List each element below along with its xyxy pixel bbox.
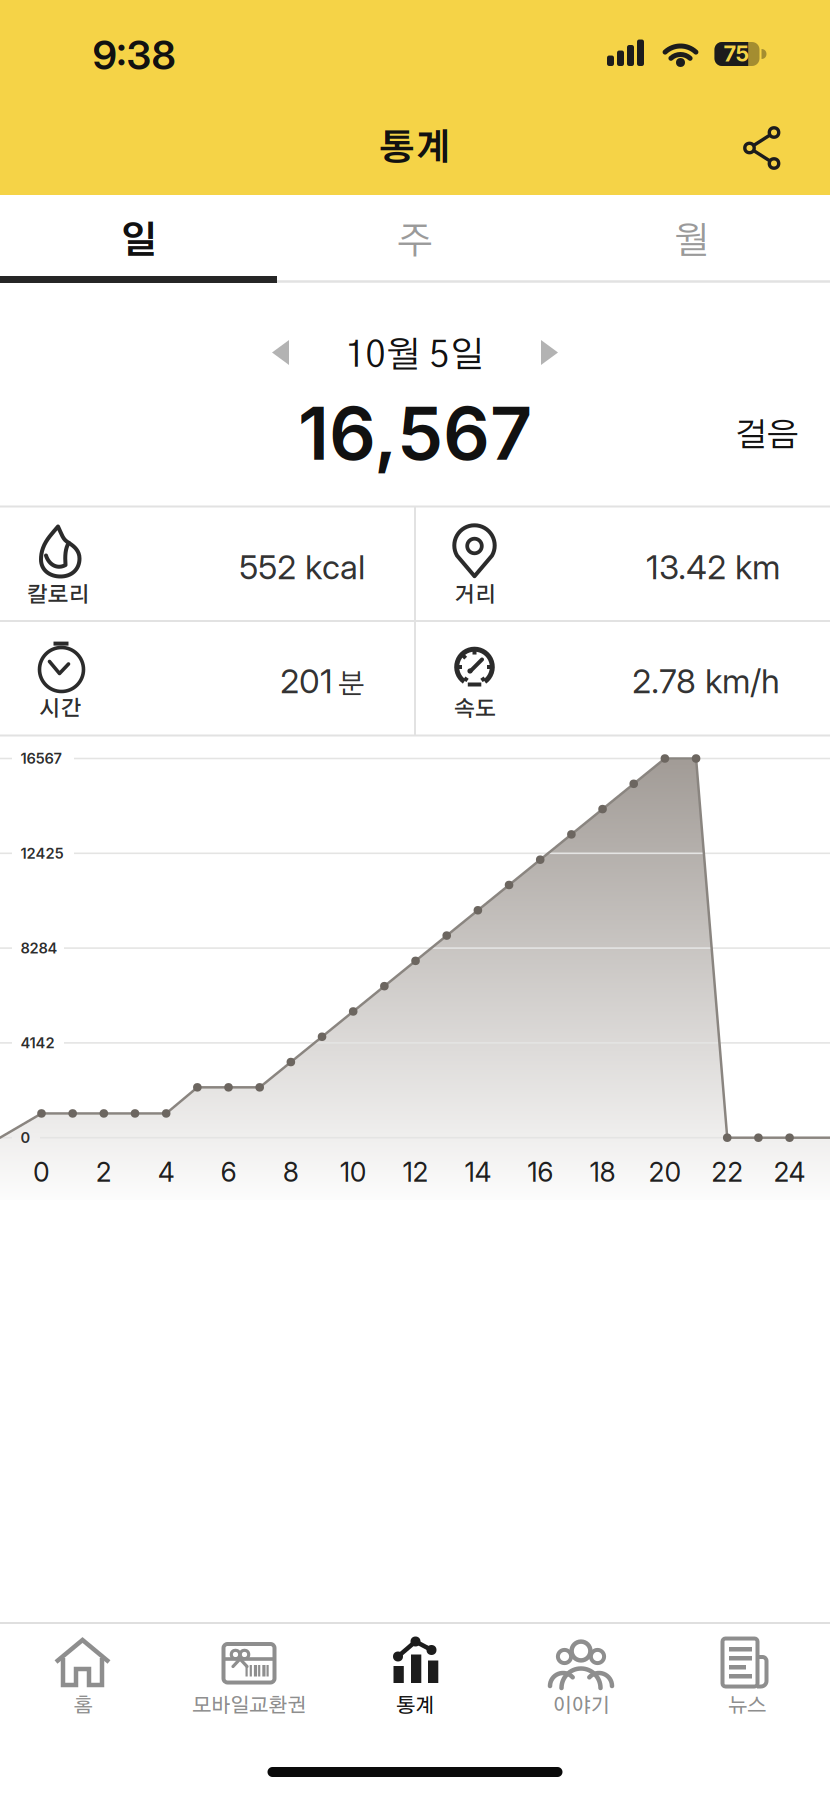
staticText: 뉴스 (728, 1696, 766, 1716)
button[interactable]: Share (727, 112, 797, 182)
staticText: 일 (120, 223, 157, 261)
staticText: 75 (723, 40, 749, 67)
staticText: 칼로리 (26, 585, 89, 606)
staticText: 걸음 (735, 419, 799, 453)
staticText: 12425 (20, 844, 63, 862)
button[interactable]: Next day (521, 334, 565, 370)
staticText: 속도 (454, 699, 496, 720)
staticText: 8 (283, 1156, 299, 1188)
button[interactable]: 통계 (332, 1626, 498, 1726)
staticText: 6 (220, 1156, 236, 1188)
staticText: 통계 (396, 1696, 434, 1716)
button[interactable]: 월 (553, 199, 829, 285)
button[interactable]: Previous day (265, 334, 309, 370)
staticText: 4 (158, 1156, 175, 1188)
staticText: 8284 (20, 939, 57, 957)
staticText: 201 (280, 661, 333, 701)
button[interactable]: 홈 (0, 1626, 166, 1726)
staticText: 시간 (39, 699, 81, 720)
button[interactable]: 주 (277, 199, 553, 285)
staticText: 552 kcal (239, 547, 365, 587)
staticText: 10 (340, 1156, 367, 1188)
staticText: 10월 5일 (345, 338, 484, 374)
staticText: 16 (527, 1156, 553, 1188)
staticText: 12 (402, 1156, 428, 1188)
staticText: 20 (648, 1156, 681, 1188)
staticText: 월 (673, 223, 709, 261)
staticText: 13.42 km (646, 547, 780, 587)
staticText: 분 (338, 671, 365, 699)
staticText: 16567 (20, 750, 61, 767)
staticText: 0 (33, 1156, 50, 1188)
button[interactable]: 모바일교환권 (166, 1626, 332, 1726)
staticText: 24 (774, 1156, 806, 1188)
staticText: 9:38 (92, 31, 175, 79)
staticText: 14 (464, 1156, 491, 1188)
button[interactable]: 일 (0, 199, 276, 285)
staticText: 0 (20, 1129, 30, 1146)
staticText: 22 (711, 1156, 743, 1188)
staticText: 2.78 km/h (632, 661, 780, 701)
staticText: 이야기 (552, 1696, 609, 1716)
button[interactable]: 뉴스 (664, 1626, 830, 1726)
staticText: 16,567 (298, 389, 532, 477)
staticText: 모바일교환권 (192, 1696, 306, 1716)
staticText: 2 (96, 1156, 112, 1188)
staticText: 4142 (20, 1034, 54, 1052)
staticText: 통계 (379, 131, 451, 167)
staticText: 18 (590, 1156, 616, 1188)
staticText: 주 (397, 223, 433, 261)
button[interactable]: 이야기 (498, 1626, 664, 1726)
staticText: 홈 (73, 1696, 92, 1716)
staticText: 거리 (454, 585, 496, 606)
